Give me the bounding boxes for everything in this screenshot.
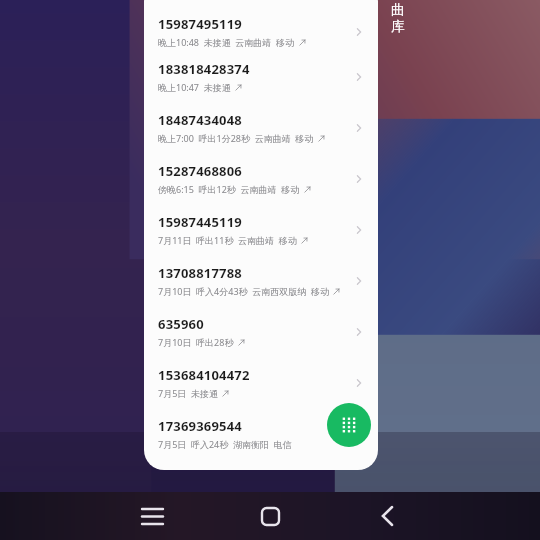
staticText: 曲 库 [391,1,405,35]
staticText: 15287468806 [158,162,242,180]
button[interactable]: Back [365,494,409,538]
button[interactable]: 15987445119 [144,204,378,255]
button[interactable]: 17369369544 [144,408,378,459]
other: Details [348,321,370,343]
other: Details [348,21,370,43]
staticText: 晚上10:47 未接通 [158,81,231,93]
button[interactable]: 635960 [144,306,378,357]
staticText: 183818428374 [158,60,250,78]
staticText: 傍晚6:15 呼出12秒 云南曲靖 移动 [158,183,300,195]
button[interactable]: Dialpad [327,403,371,447]
button[interactable]: 15987495119 [144,0,378,51]
staticText: 635960 [158,315,204,333]
other: Details [348,168,370,190]
staticText: 15987495119 [158,15,242,33]
button[interactable]: 18487434048 [144,102,378,153]
button[interactable]: Recent apps [130,494,174,538]
staticText: 7月5日 未接通 [158,387,218,399]
other: Details [348,219,370,241]
staticText: 晚上7:00 呼出1分28秒 云南曲靖 移动 [158,132,314,144]
other: Details [348,270,370,292]
button[interactable]: 13708817788 [144,255,378,306]
button[interactable]: 183818428374 [144,51,378,102]
button[interactable]: 153684104472 [144,357,378,408]
staticText: 153684104472 [158,366,250,384]
staticText: 7月10日 呼出28秒 [158,336,234,348]
staticText: 18487434048 [158,111,242,129]
staticText: 7月11日 呼出11秒 云南曲靖 移动 [158,234,297,246]
other: Details [348,66,370,88]
staticText: 17369369544 [158,417,242,435]
button[interactable]: 15287468806 [144,153,378,204]
staticText: 15987445119 [158,213,242,231]
staticText: 7月5日 呼入24秒 湖南衡阳 电信 [158,438,292,450]
staticText: 13708817788 [158,264,242,282]
staticText: 晚上10:48 未接通 云南曲靖 移动 [158,36,295,48]
other: Details [348,117,370,139]
button[interactable]: Home [248,494,292,538]
other: Details [348,372,370,394]
staticText: 7月10日 呼入4分43秒 云南西双版纳 移动 [158,285,329,297]
other: Details [348,423,370,445]
